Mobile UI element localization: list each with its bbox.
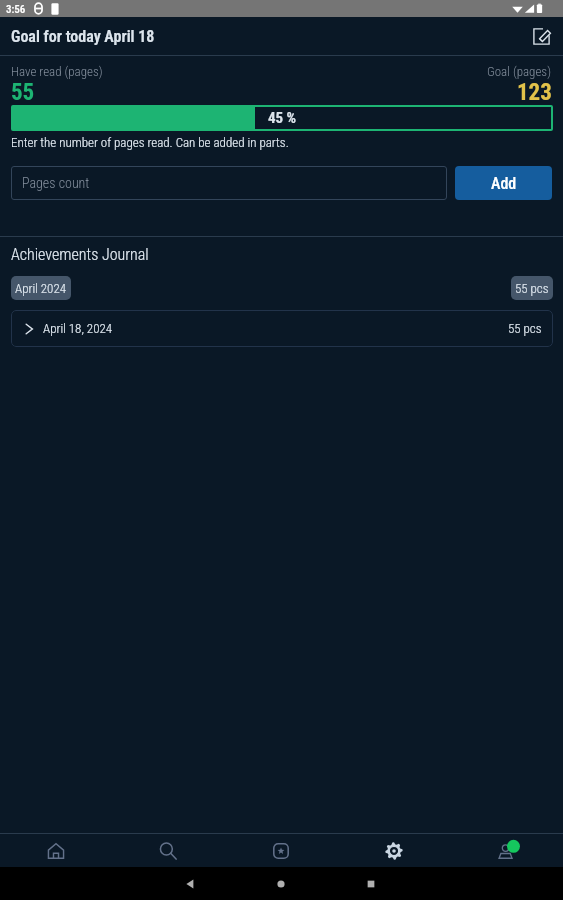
staticText: April 2024: [15, 281, 67, 296]
button[interactable]: April 18, 2024: [11, 310, 553, 347]
staticText: April 18, 2024: [43, 321, 113, 336]
staticText: 55: [11, 79, 35, 106]
staticText: Have read (pages): [11, 64, 103, 79]
staticText: 55 pcs: [508, 321, 542, 336]
staticText: 45 %: [268, 109, 297, 127]
staticText: Enter the number of pages read. Can be a…: [11, 135, 289, 150]
button[interactable]: Profile: [450, 834, 563, 867]
staticText: Goal (pages): [487, 64, 552, 79]
button[interactable]: Add: [455, 166, 552, 200]
staticText: Add: [491, 174, 517, 193]
staticText: 55 pcs: [515, 281, 549, 296]
staticText: Pages count: [22, 175, 90, 191]
button[interactable]: April 2024: [11, 276, 71, 300]
button[interactable]: Search: [112, 834, 224, 867]
button[interactable]: Settings: [337, 834, 450, 867]
button[interactable]: Home: [0, 834, 112, 867]
button[interactable]: Edit goal: [526, 17, 556, 55]
button[interactable]: Pages count: [11, 166, 447, 200]
staticText: 123: [517, 79, 552, 106]
staticText: 3:56: [6, 3, 26, 16]
button[interactable]: Library: [224, 834, 337, 867]
staticText: Goal for today April 18: [11, 27, 155, 46]
staticText: Achievements Journal: [11, 245, 149, 264]
